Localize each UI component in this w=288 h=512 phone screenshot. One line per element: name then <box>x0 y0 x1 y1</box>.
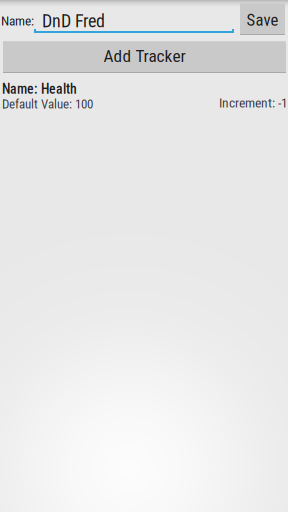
staticText: Increment: -1 <box>219 95 288 111</box>
button[interactable]: Name: Health <box>2 83 285 113</box>
button[interactable]: DnD Fred <box>34 11 234 39</box>
staticText: Name: <box>1 13 34 29</box>
button[interactable]: Add Tracker <box>3 41 286 73</box>
staticText: DnD Fred <box>42 10 105 32</box>
staticText: Name: Health <box>2 81 77 97</box>
staticText: Add Tracker <box>103 46 185 66</box>
button[interactable]: Save <box>240 3 285 35</box>
staticText: Save <box>246 10 278 30</box>
staticText: Default Value: 100 <box>2 96 93 112</box>
